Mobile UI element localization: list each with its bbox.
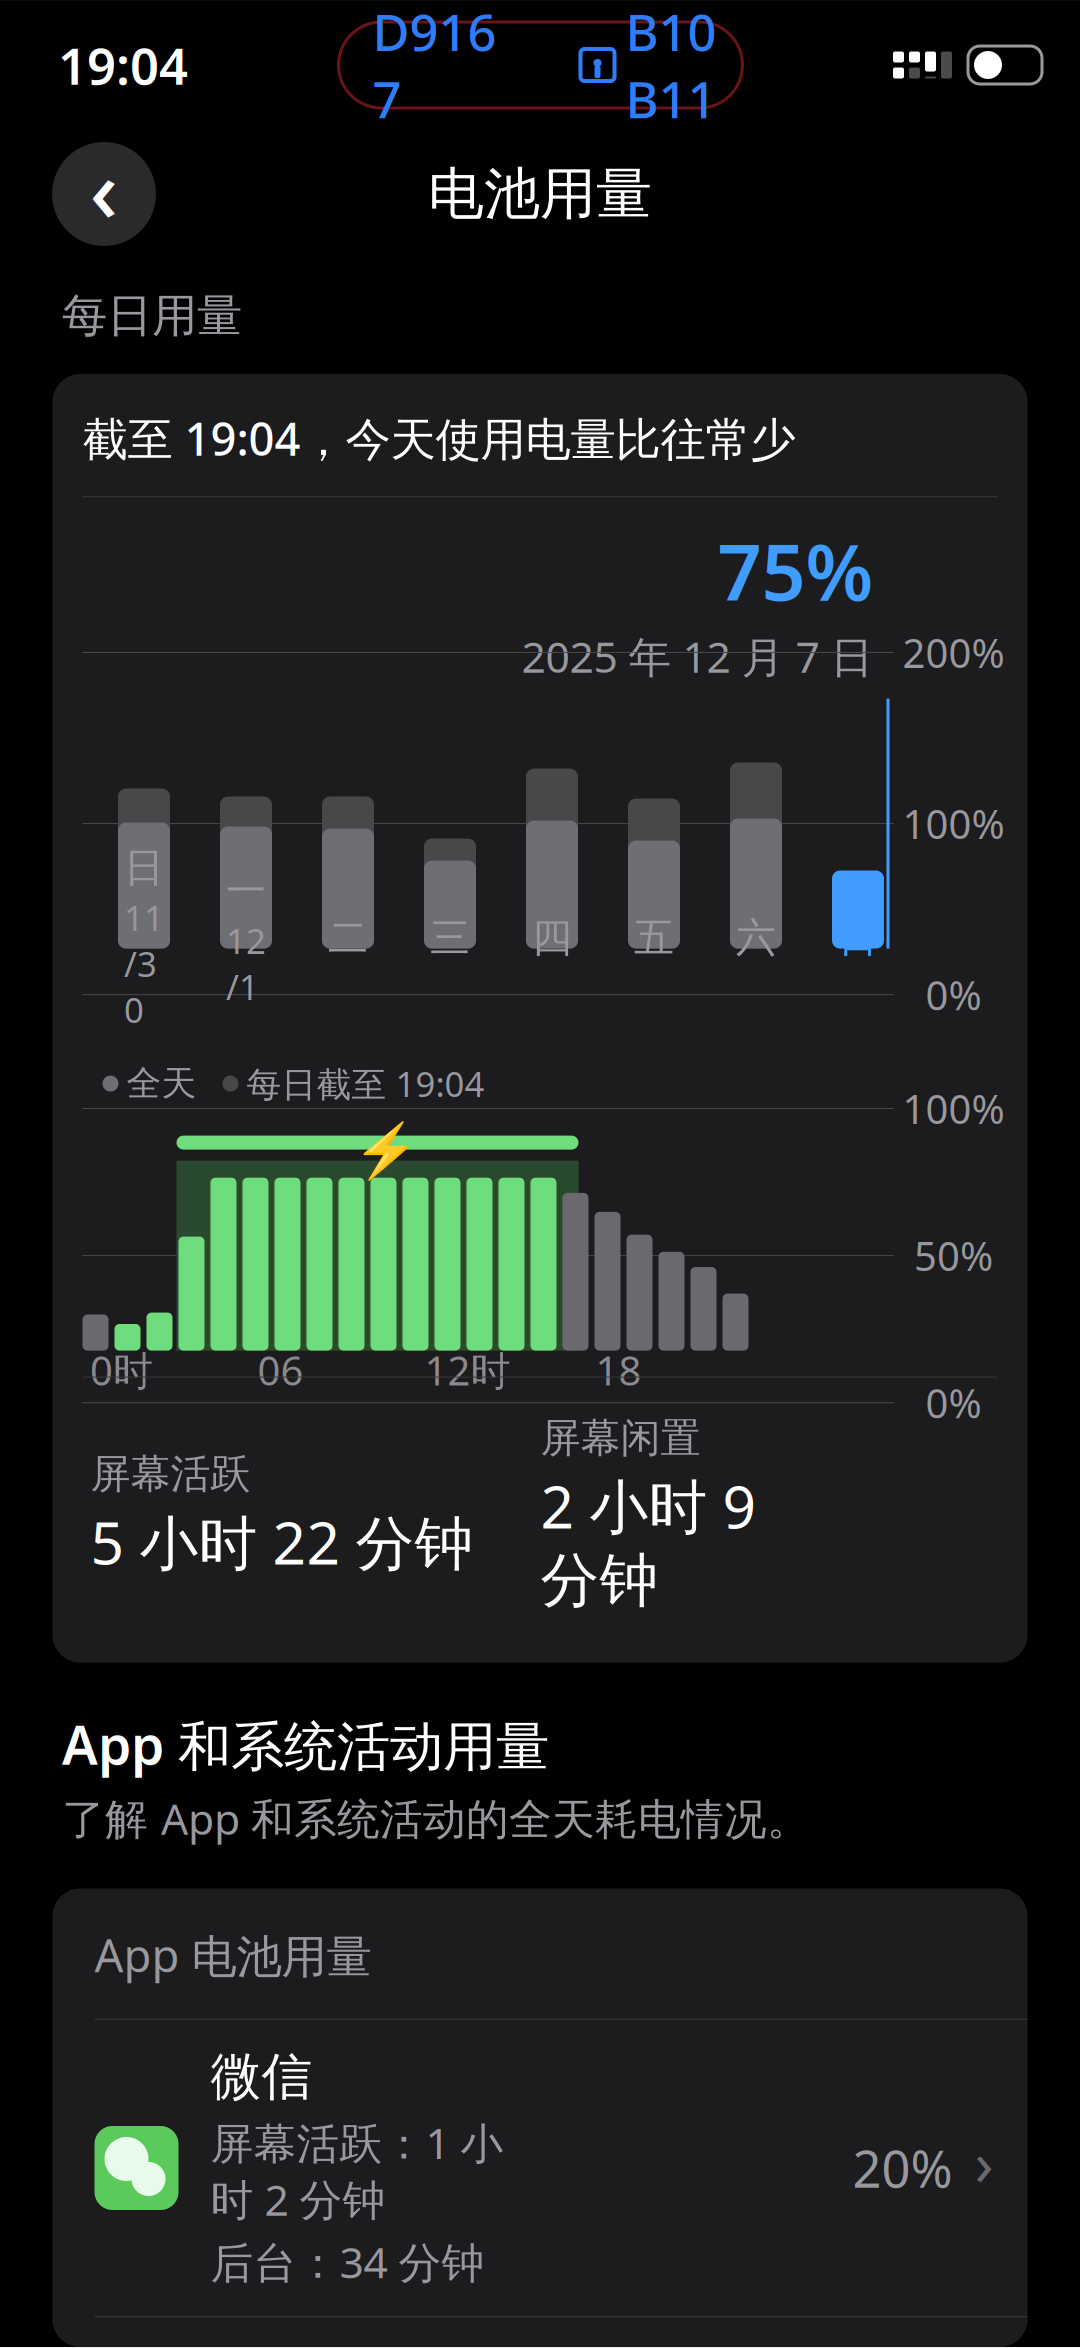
staticText: D9167 — [372, 0, 496, 132]
staticText: 0% — [925, 968, 981, 1021]
staticText: 后台：34 分钟 — [210, 2233, 484, 2290]
staticText: 2 小时 9 分钟 — [540, 1467, 756, 1617]
staticText: 一 — [226, 866, 266, 915]
staticText: 11/30 — [124, 894, 164, 1032]
staticText: 截至 19:04，今天使用电量比往常少 — [82, 408, 795, 468]
staticText: App 电池用量 — [94, 1924, 371, 1985]
staticText: ‹ — [89, 130, 118, 246]
staticText: 0% — [925, 1376, 981, 1429]
staticText: 75% — [717, 519, 873, 622]
staticText: 全天 — [126, 1062, 196, 1105]
staticText: 屏幕活跃 — [90, 1450, 250, 1499]
staticText: 屏幕活跃：1 小时 2 分钟 — [210, 2114, 503, 2227]
staticText: ⚡ — [352, 1121, 418, 1181]
staticText: 18 — [595, 1343, 641, 1397]
staticText: 微信 — [210, 2046, 312, 2108]
staticText: 每日用量 — [62, 288, 242, 344]
staticText: 二 — [328, 913, 368, 962]
staticText: 五 — [634, 913, 674, 962]
staticText: 四 — [532, 913, 572, 962]
staticText: 日 — [838, 913, 878, 962]
staticText: 12/1 — [226, 917, 266, 1010]
staticText: B10 B11 — [625, 0, 716, 132]
staticText: 100% — [902, 1082, 1004, 1135]
staticText: 20% — [852, 2134, 952, 2202]
staticText: 5 小时 22 分钟 — [90, 1503, 473, 1581]
staticText: 19:04 — [58, 31, 188, 99]
staticText: 0时 — [90, 1343, 153, 1397]
staticText: › — [974, 2121, 993, 2203]
staticText: 屏幕闲置 — [540, 1414, 700, 1463]
staticText: 06 — [257, 1343, 303, 1397]
staticText: 2025 年 12 月 7 日 — [521, 628, 873, 685]
staticText: App 和系统活动用量 — [62, 1709, 549, 1780]
staticText: 日 — [124, 843, 164, 892]
staticText: 每日截至 19:04 — [246, 1061, 484, 1107]
staticText: 100% — [902, 797, 1004, 850]
staticText: 了解 App 和系统活动的全天耗电情况。 — [62, 1790, 810, 1846]
button[interactable]: 返回 — [52, 142, 156, 246]
staticText: 三 — [430, 913, 470, 962]
staticText: 200% — [902, 626, 1004, 679]
staticText: 六 — [736, 913, 776, 962]
staticText: 电池用量 — [428, 160, 652, 228]
staticText: 50% — [914, 1229, 993, 1282]
staticText: 12时 — [424, 1343, 510, 1397]
button[interactable]: 微信 — [52, 2020, 1027, 2316]
